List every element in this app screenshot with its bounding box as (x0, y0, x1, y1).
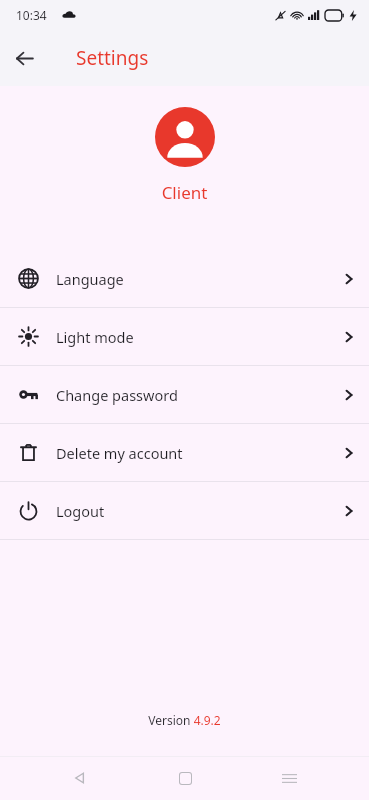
button[interactable]: Delete my account (0, 424, 369, 481)
button[interactable]: Change password (0, 366, 369, 423)
button[interactable]: Logout (0, 482, 369, 539)
staticText: Language (56, 269, 328, 289)
staticText: Client (0, 181, 369, 204)
staticText: Settings (76, 45, 149, 71)
button[interactable]: Home (161, 756, 209, 800)
button[interactable]: Back (0, 34, 48, 82)
staticText: 10:34 (16, 7, 47, 23)
button[interactable]: Light mode (0, 308, 369, 365)
staticText: Change password (56, 385, 328, 405)
staticText: Logout (56, 501, 328, 521)
staticText: Delete my account (56, 443, 328, 463)
button[interactable]: Language (0, 250, 369, 307)
button[interactable]: Back (56, 756, 104, 800)
staticText: Version 4.9.2 (0, 712, 369, 728)
button[interactable]: Recents (265, 756, 313, 800)
staticText: Light mode (56, 327, 328, 347)
